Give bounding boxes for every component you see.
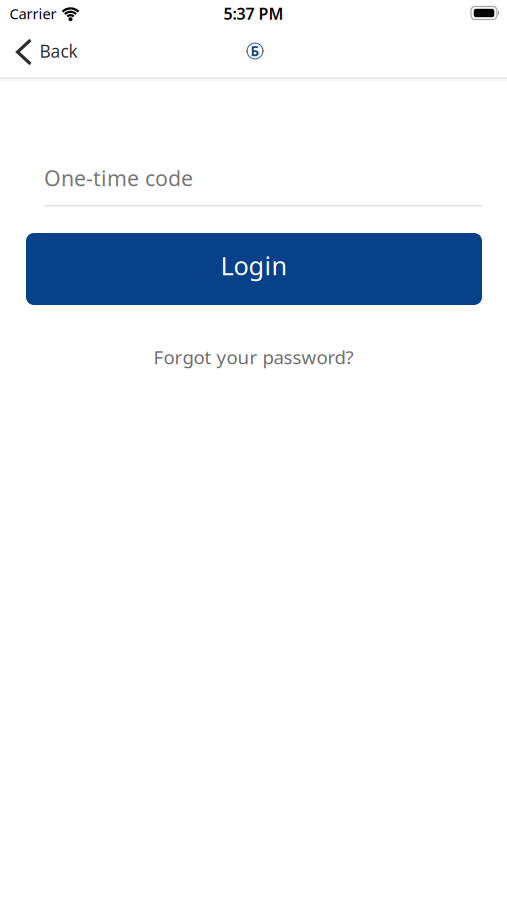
staticText: Carrier [9, 4, 56, 23]
button[interactable]: Forgot your password? [128, 339, 378, 375]
staticText: Б [250, 42, 259, 60]
staticText: Forgot your password? [153, 345, 353, 369]
button[interactable]: Login [26, 233, 482, 305]
staticText: Login [220, 249, 287, 282]
staticText: 5:37 PM [223, 3, 283, 24]
staticText: One-time code [44, 164, 193, 192]
textField[interactable]: One-time code [44, 164, 482, 192]
staticText: One-time code [44, 164, 193, 192]
staticText: Back [39, 39, 77, 62]
button[interactable]: Back [8, 35, 86, 69]
